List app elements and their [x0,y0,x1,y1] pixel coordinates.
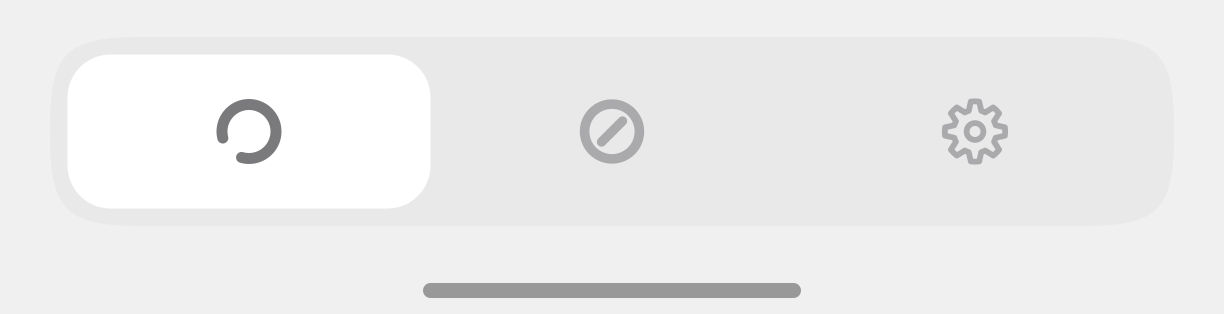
button[interactable]: Settings [793,54,1156,208]
button[interactable] [67,54,430,208]
button[interactable]: Disabled [430,54,793,208]
